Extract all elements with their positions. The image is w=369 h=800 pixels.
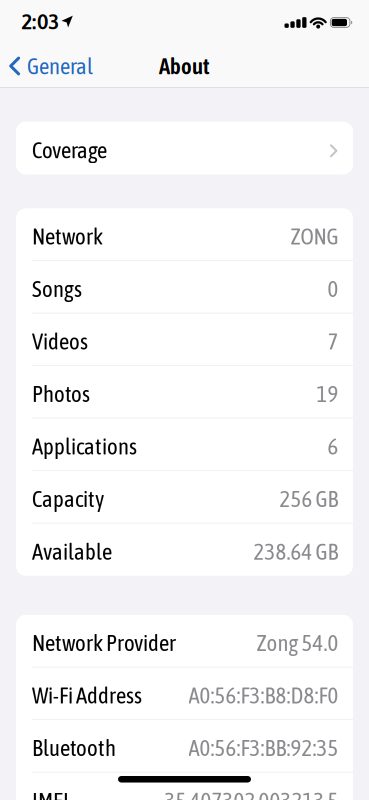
staticText: ZONG xyxy=(290,223,338,249)
staticText: 6 xyxy=(327,433,338,459)
staticText: 35 407302 003213 5 xyxy=(164,788,338,800)
staticText: Capacity xyxy=(32,486,104,512)
staticText: Network Provider xyxy=(32,630,176,656)
staticText: 238.64 GB xyxy=(253,539,338,565)
staticText: Available xyxy=(32,539,112,565)
staticText: 0 xyxy=(327,276,338,302)
staticText: Wi-Fi Address xyxy=(32,682,142,708)
button[interactable]: Back to General xyxy=(0,53,93,79)
staticText: Songs xyxy=(32,276,82,302)
staticText: Photos xyxy=(32,381,90,407)
staticText: A0:56:F3:B8:D8:F0 xyxy=(188,682,338,708)
staticText: Videos xyxy=(32,328,88,354)
staticText: 19 xyxy=(316,381,338,407)
staticText: 256 GB xyxy=(279,486,338,512)
staticText: Bluetooth xyxy=(32,735,116,761)
button[interactable]: Coverage xyxy=(16,122,353,174)
staticText: Network xyxy=(32,223,103,249)
staticText: IMEI xyxy=(32,788,69,800)
staticText: A0:56:F3:BB:92:35 xyxy=(188,735,338,761)
staticText: Applications xyxy=(32,433,137,459)
staticText: General xyxy=(27,53,93,79)
staticText: About xyxy=(159,53,210,79)
staticText: Coverage xyxy=(32,137,107,163)
staticText: 7 xyxy=(327,328,338,354)
staticText: 2:03 xyxy=(21,9,59,34)
staticText: Zong 54.0 xyxy=(256,630,338,656)
